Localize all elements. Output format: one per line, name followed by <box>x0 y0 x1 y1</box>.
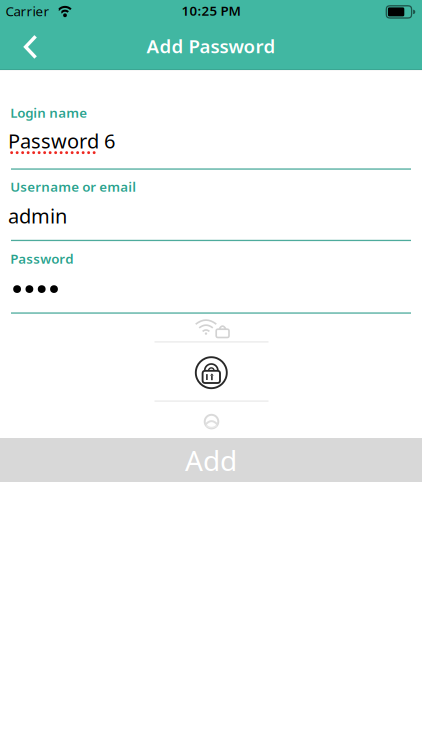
staticText: Username or email <box>10 178 136 195</box>
staticText: Add Password <box>146 33 275 58</box>
staticText: Password <box>10 250 73 267</box>
staticText: Login name <box>10 104 87 121</box>
button[interactable]: Back <box>0 0 58 70</box>
button[interactable]: Add <box>0 438 422 482</box>
staticText: Add <box>185 442 237 479</box>
staticText: Password 6 <box>8 127 115 154</box>
staticText: admin <box>8 202 67 229</box>
staticText: 10:25 PM <box>181 2 240 19</box>
staticText: Carrier <box>6 2 50 20</box>
